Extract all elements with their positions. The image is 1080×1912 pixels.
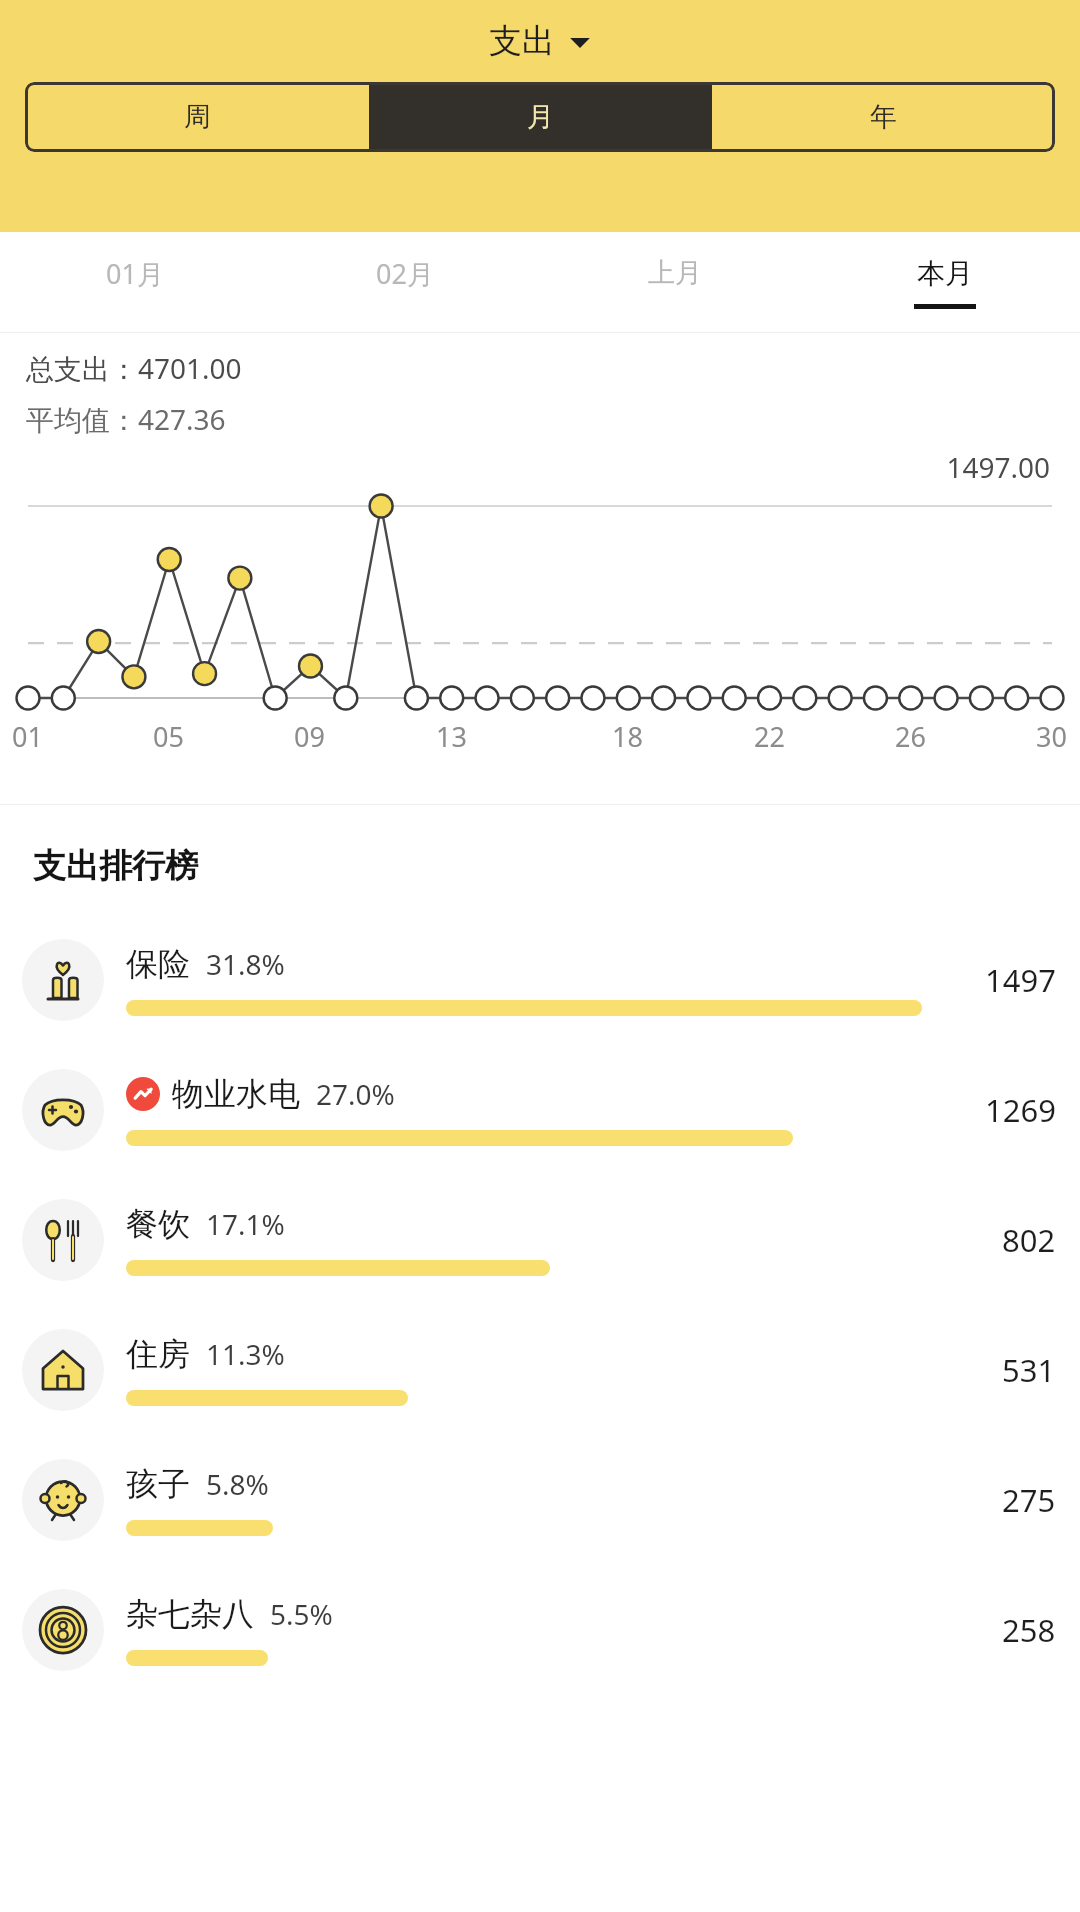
staticText: 支出 [489, 20, 555, 62]
staticText: 杂七杂八 [126, 1594, 254, 1634]
staticText: 5.5% [270, 1595, 333, 1633]
staticText: 物业水电 [172, 1074, 300, 1114]
staticText: 孩子 [126, 1464, 190, 1504]
staticText: 本月 [917, 256, 973, 291]
button[interactable]: 月 [369, 82, 712, 152]
button[interactable]: 物业水电 [0, 1045, 1080, 1175]
staticText: 05 [153, 718, 184, 755]
button[interactable]: 本月 [810, 232, 1080, 332]
staticText: 5.8% [206, 1465, 269, 1503]
staticText: 30 [1036, 718, 1067, 755]
staticText: 年 [870, 100, 897, 134]
button[interactable]: 餐饮 [0, 1175, 1080, 1305]
staticText: 802 [1002, 1219, 1056, 1261]
button[interactable]: 保险 [0, 915, 1080, 1045]
staticText: 26 [895, 718, 926, 755]
staticText: 18 [612, 718, 643, 755]
staticText: 27.0% [316, 1075, 395, 1113]
staticText: 11.3% [206, 1335, 285, 1373]
staticText: 1497 [985, 959, 1056, 1001]
staticText: 月 [527, 100, 554, 134]
staticText: 总支出：4701.00 [26, 349, 242, 387]
staticText: 周 [184, 100, 211, 134]
staticText: 支出排行榜 [33, 845, 198, 887]
button[interactable]: 支出 [473, 14, 608, 68]
staticText: 258 [1002, 1609, 1056, 1651]
button[interactable]: 周 [25, 82, 369, 152]
button[interactable]: 孩子 [0, 1435, 1080, 1565]
staticText: 17.1% [206, 1205, 285, 1243]
button[interactable]: 上月 [540, 232, 810, 332]
staticText: 保险 [126, 944, 190, 984]
staticText: 01月 [106, 255, 164, 292]
staticText: 上月 [648, 256, 702, 290]
button[interactable]: 02月 [270, 232, 540, 332]
button[interactable]: 年 [712, 82, 1055, 152]
staticText: 22 [754, 718, 785, 755]
staticText: 住房 [126, 1334, 190, 1374]
staticText: 31.8% [206, 945, 285, 983]
staticText: 餐饮 [126, 1204, 190, 1244]
staticText: 01 [12, 718, 43, 755]
staticText: 平均值：427.36 [26, 400, 226, 438]
staticText: 13 [436, 718, 467, 755]
staticText: 1269 [985, 1089, 1056, 1131]
staticText: 275 [1002, 1479, 1056, 1521]
staticText: 1497.00 [0, 448, 1050, 486]
staticText: 09 [294, 718, 325, 755]
button[interactable]: 01月 [0, 232, 270, 332]
button[interactable]: 杂七杂八 [0, 1565, 1080, 1695]
staticText: 531 [1002, 1349, 1056, 1391]
button[interactable]: 住房 [0, 1305, 1080, 1435]
staticText: 02月 [376, 255, 434, 292]
